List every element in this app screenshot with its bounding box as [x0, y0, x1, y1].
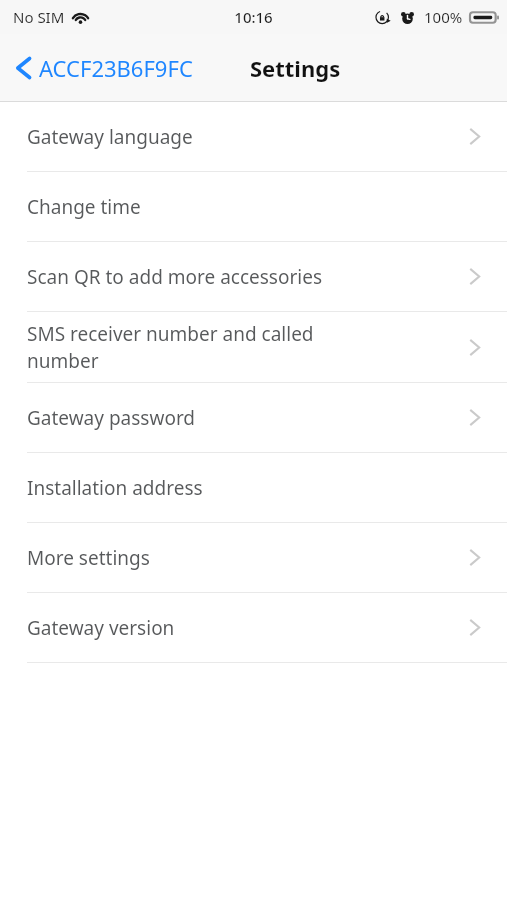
button[interactable]: SMS receiver number and called number — [0, 312, 507, 382]
staticText: 100% — [424, 7, 463, 27]
button[interactable]: Gateway password — [0, 383, 507, 452]
staticText: Gateway password — [27, 405, 447, 431]
staticText: Gateway language — [27, 124, 447, 150]
staticText: SMS receiver number and called number — [27, 321, 387, 374]
staticText: More settings — [27, 545, 447, 571]
button[interactable]: Scan QR to add more accessories — [0, 242, 507, 311]
staticText: Settings — [250, 53, 341, 83]
other: Back — [14, 54, 33, 82]
button[interactable]: Change time — [0, 172, 507, 241]
staticText: Change time — [27, 194, 447, 220]
button[interactable]: Gateway version — [0, 593, 507, 662]
button[interactable]: Installation address — [0, 453, 507, 522]
staticText: ACCF23B6F9FC — [39, 53, 193, 83]
button[interactable]: Gateway language — [0, 102, 507, 171]
staticText: Installation address — [27, 475, 447, 501]
staticText: No SIM — [13, 7, 65, 27]
staticText: 10:16 — [234, 7, 273, 27]
staticText: Gateway version — [27, 615, 447, 641]
button[interactable]: More settings — [0, 523, 507, 592]
staticText: Scan QR to add more accessories — [27, 264, 447, 290]
button[interactable]: Back — [0, 45, 201, 91]
